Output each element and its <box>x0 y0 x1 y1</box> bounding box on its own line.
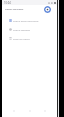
staticText: Watch faces and more <box>13 19 39 22</box>
button[interactable]: Recents <box>11 108 17 114</box>
staticText: Galaxy Wearable <box>5 8 24 11</box>
button[interactable]: Back <box>42 108 48 114</box>
button[interactable]: Find My Watch <box>2 34 57 43</box>
button[interactable]: Watch settings <box>2 25 57 34</box>
button[interactable]: Account <box>44 6 51 13</box>
button[interactable]: Home <box>27 108 33 114</box>
staticText: 10:04 <box>4 1 11 5</box>
button[interactable]: Watch faces and more <box>2 16 57 25</box>
staticText: Watch settings <box>13 28 30 31</box>
staticText: Find My Watch <box>13 37 30 40</box>
